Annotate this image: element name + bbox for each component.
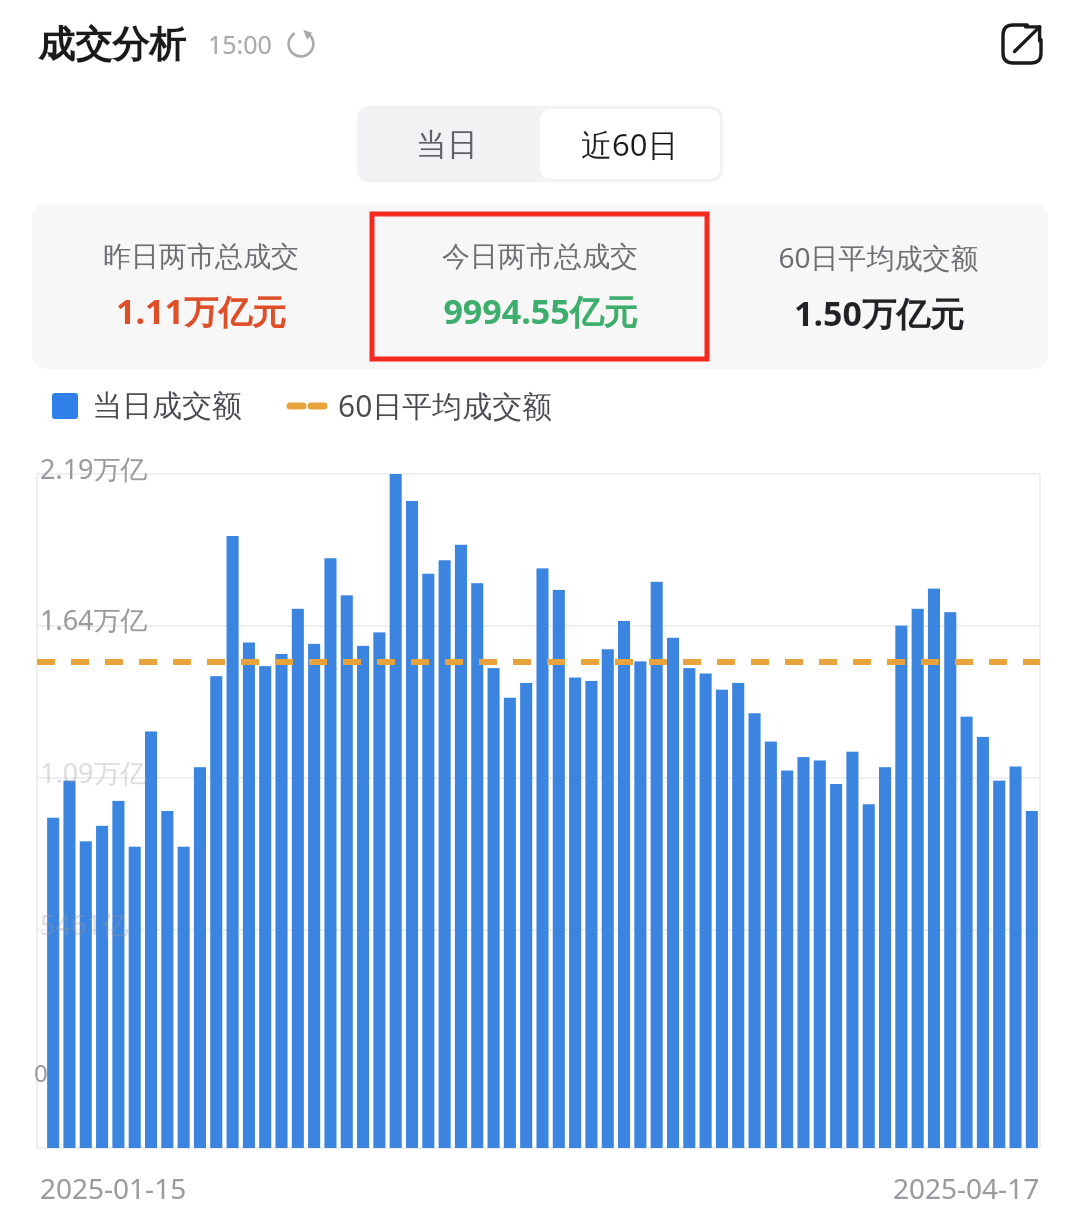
staticText: 1.64万亿: [40, 601, 148, 638]
button[interactable]: 当日: [357, 106, 537, 182]
staticText: 当日: [416, 125, 478, 164]
staticText: 2.19万亿: [40, 450, 148, 487]
staticText: 当日成交额: [92, 387, 242, 425]
staticText: 1.09万亿: [40, 754, 148, 791]
staticText: 成交分析: [38, 21, 186, 68]
staticText: 昨日两市总成交: [103, 239, 299, 274]
staticText: 9994.55亿元: [443, 288, 638, 334]
button[interactable]: 近60日: [540, 109, 720, 179]
staticText: 60日平均成交额: [338, 385, 553, 426]
staticText: 近60日: [581, 123, 679, 165]
staticText: 2025-04-17: [893, 1169, 1040, 1207]
staticText: 60日平均成交额: [778, 238, 979, 276]
staticText: 0: [34, 1056, 48, 1089]
button[interactable]: 今日两市总成交: [370, 204, 709, 369]
staticText: 1.11万亿元: [116, 288, 286, 334]
staticText: 15:00: [208, 27, 272, 61]
staticText: 2025-01-15: [40, 1169, 187, 1207]
button[interactable]: 60日平均成交额: [709, 204, 1048, 369]
staticText: 今日两市总成交: [442, 239, 638, 274]
staticText: 1.50万亿元: [794, 290, 964, 336]
button[interactable]: Share: [994, 16, 1050, 72]
button[interactable]: Refresh: [284, 27, 318, 61]
button[interactable]: 昨日两市总成交: [32, 204, 370, 369]
staticText: 5461亿: [40, 906, 129, 943]
